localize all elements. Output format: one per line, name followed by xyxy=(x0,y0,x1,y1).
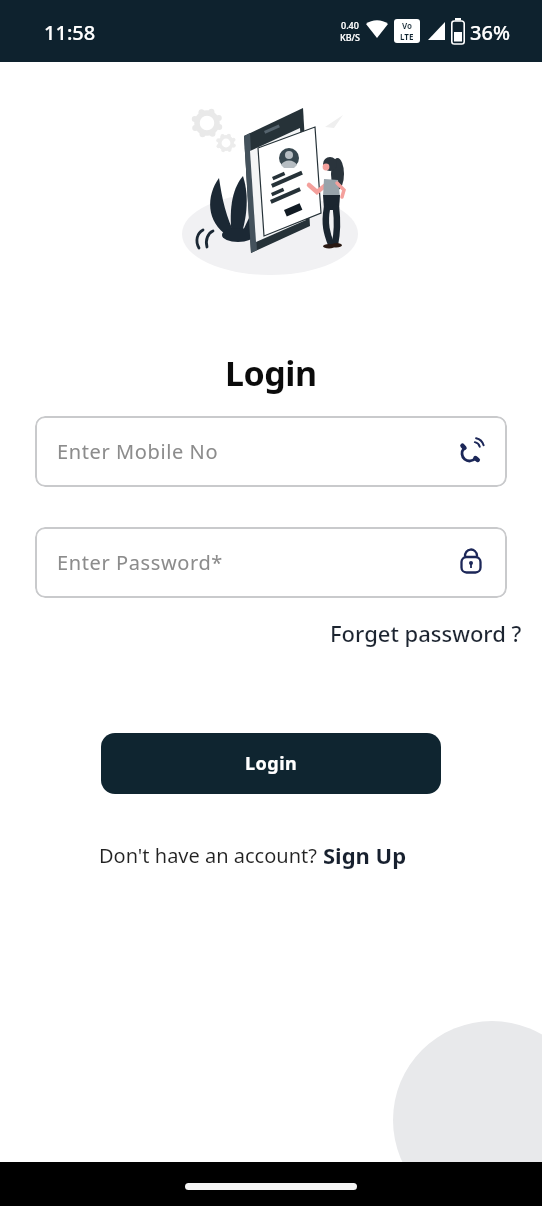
staticText: Enter Password* xyxy=(57,549,223,576)
staticText: Login xyxy=(245,751,298,776)
button[interactable]: Login xyxy=(101,733,441,794)
staticText: 36% xyxy=(470,19,510,46)
staticText: 11:58 xyxy=(44,19,96,46)
button[interactable]: Forget password ? xyxy=(330,618,522,648)
button[interactable]: Enter Mobile No xyxy=(35,416,507,487)
staticText: KB/S xyxy=(340,31,360,43)
staticText: Don't have an account? xyxy=(99,842,323,869)
staticText: 0.40 xyxy=(341,19,359,31)
staticText: LTE xyxy=(400,31,414,42)
button[interactable]: Enter Password* xyxy=(35,527,507,598)
button[interactable]: Sign Up xyxy=(323,840,407,870)
staticText: Vo xyxy=(402,20,413,31)
staticText: Login xyxy=(225,350,317,396)
staticText: Enter Mobile No xyxy=(57,438,219,465)
